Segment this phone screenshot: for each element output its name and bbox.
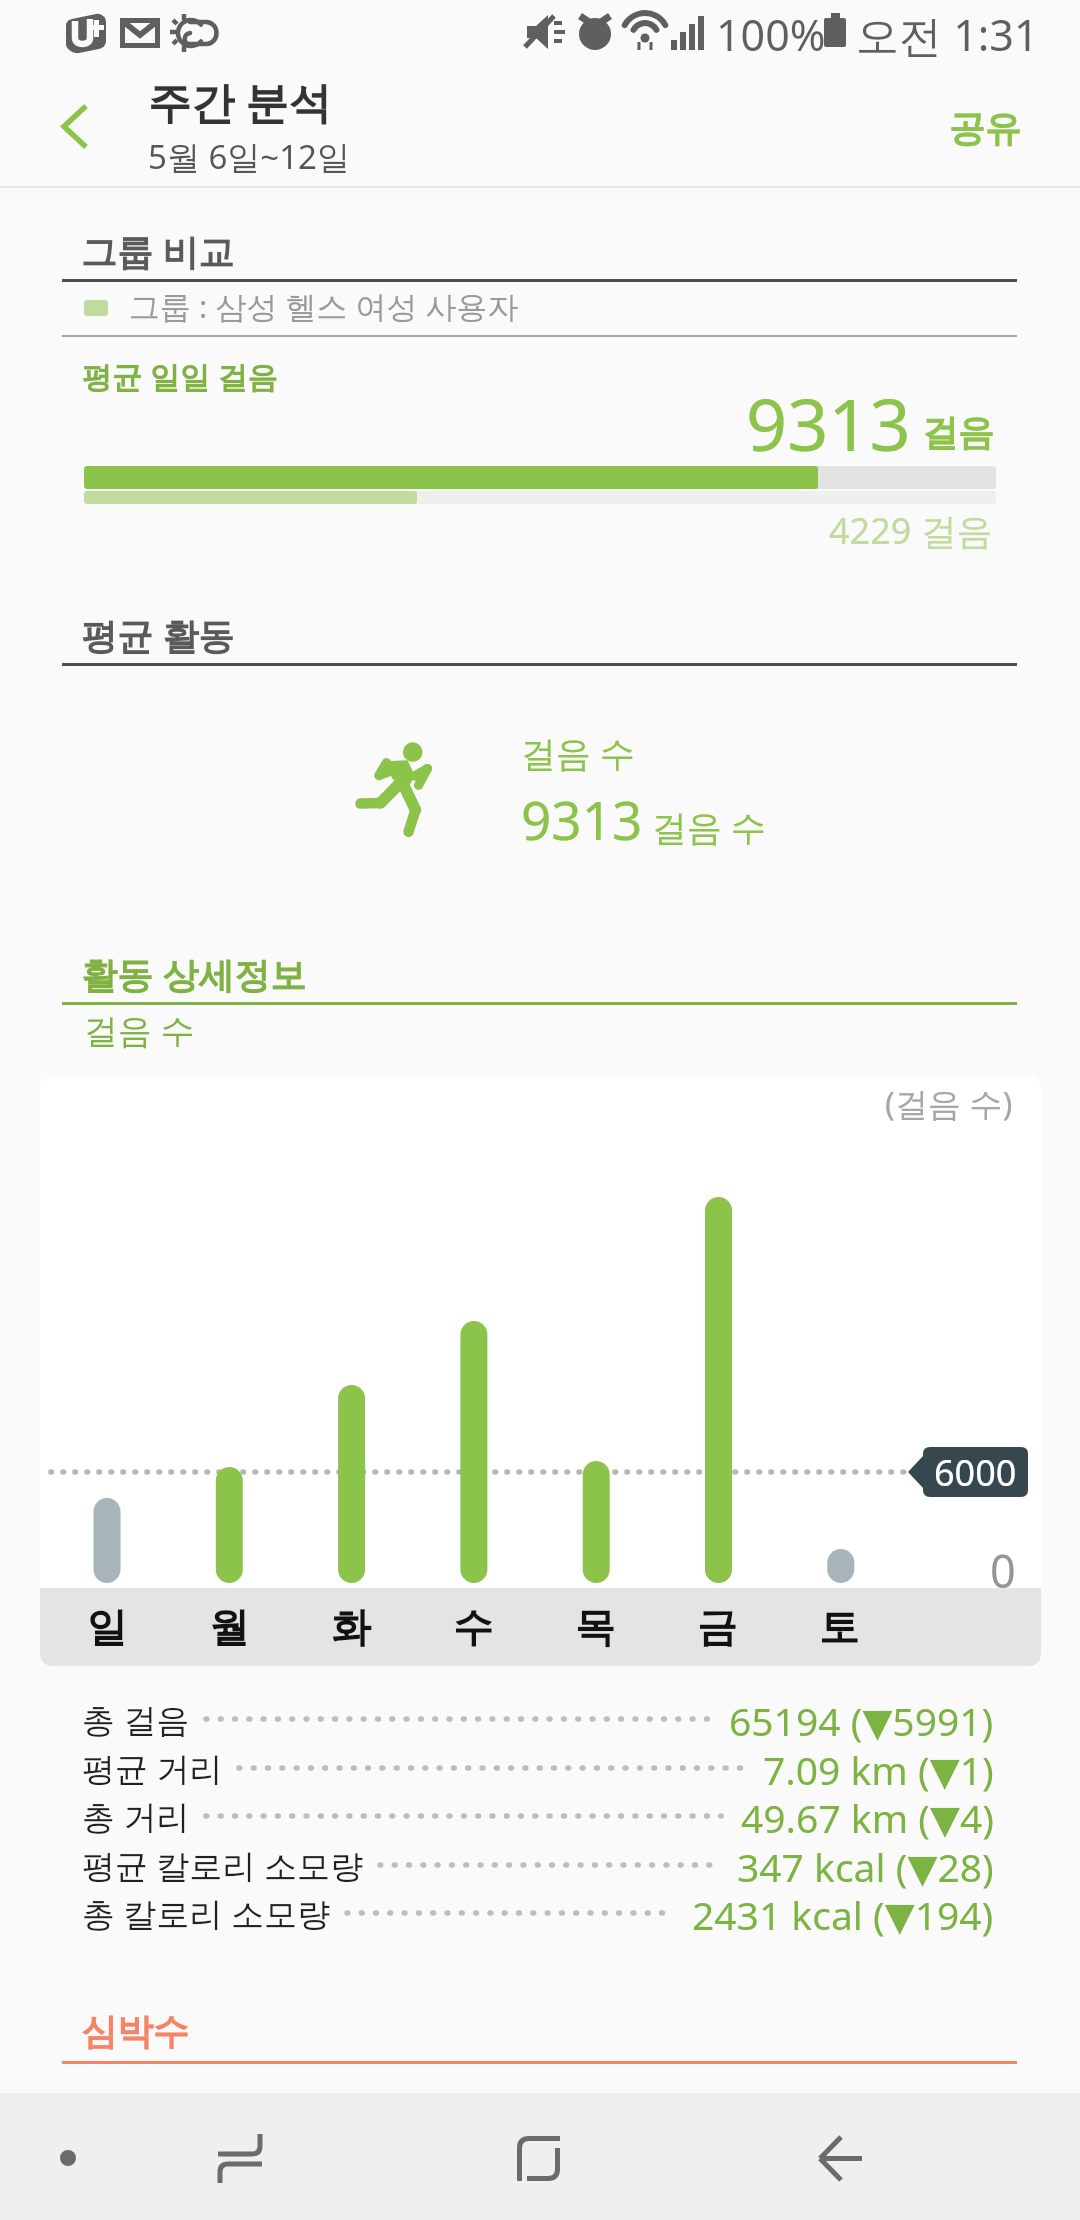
staticText: 그룹 비교 bbox=[81, 227, 235, 276]
staticText: 총 거리 bbox=[82, 1794, 190, 1839]
staticText: 토 bbox=[819, 1602, 859, 1652]
staticText: 49.67 km (▼4) bbox=[741, 1791, 994, 1841]
button[interactable]: 공유 bbox=[920, 73, 1050, 183]
staticText: 9313 bbox=[746, 374, 911, 472]
button[interactable]: Home bbox=[478, 2103, 598, 2213]
staticText: 347 kcal (▼28) bbox=[737, 1840, 994, 1890]
staticText: 6000 bbox=[934, 1448, 1017, 1497]
staticText: 수 bbox=[453, 1602, 493, 1652]
button[interactable]: Back bbox=[22, 72, 132, 182]
staticText: 평균 칼로리 소모량 bbox=[82, 1843, 364, 1888]
staticText: 공유 bbox=[949, 106, 1021, 151]
staticText: 평균 일일 걸음 bbox=[82, 356, 278, 397]
staticText: 목 bbox=[575, 1602, 615, 1652]
staticText: 주간 분석 bbox=[148, 72, 332, 131]
staticText: 100% bbox=[716, 5, 826, 64]
staticText: 그룹 : 삼성 헬스 여성 사용자 bbox=[129, 285, 519, 327]
staticText: 총 걸음 bbox=[82, 1697, 190, 1742]
staticText: (걸음 수) bbox=[885, 1081, 1013, 1126]
button[interactable]: Recents bbox=[180, 2103, 300, 2213]
staticText: 65194 (▼5991) bbox=[729, 1694, 994, 1744]
staticText: 걸음 수 bbox=[521, 729, 636, 777]
staticText: 걸음 bbox=[922, 410, 994, 455]
staticText: 걸음 수 bbox=[84, 1007, 195, 1053]
staticText: 월 bbox=[209, 1602, 249, 1652]
staticText: 5월 6일~12일 bbox=[148, 134, 350, 179]
staticText: 화 bbox=[331, 1602, 371, 1652]
staticText: 7.09 km (▼1) bbox=[763, 1743, 994, 1793]
staticText: 걸음 수 bbox=[652, 803, 767, 851]
staticText: 활동 상세정보 bbox=[81, 950, 307, 999]
staticText: 9313 bbox=[521, 783, 643, 855]
button[interactable]: Assistant bbox=[8, 2103, 128, 2213]
staticText: 2431 kcal (▼194) bbox=[692, 1888, 994, 1938]
staticText: 심박수 bbox=[81, 2009, 189, 2054]
staticText: 오전 1:31 bbox=[856, 5, 1039, 64]
staticText: 평균 거리 bbox=[82, 1746, 223, 1791]
staticText: 4229 걸음 bbox=[829, 506, 993, 555]
staticText: 평균 활동 bbox=[81, 611, 235, 660]
staticText: 총 칼로리 소모량 bbox=[82, 1891, 331, 1936]
button[interactable]: Back bbox=[780, 2103, 900, 2213]
staticText: 금 bbox=[697, 1602, 737, 1652]
staticText: 0 bbox=[990, 1540, 1016, 1601]
staticText: 일 bbox=[87, 1602, 127, 1652]
